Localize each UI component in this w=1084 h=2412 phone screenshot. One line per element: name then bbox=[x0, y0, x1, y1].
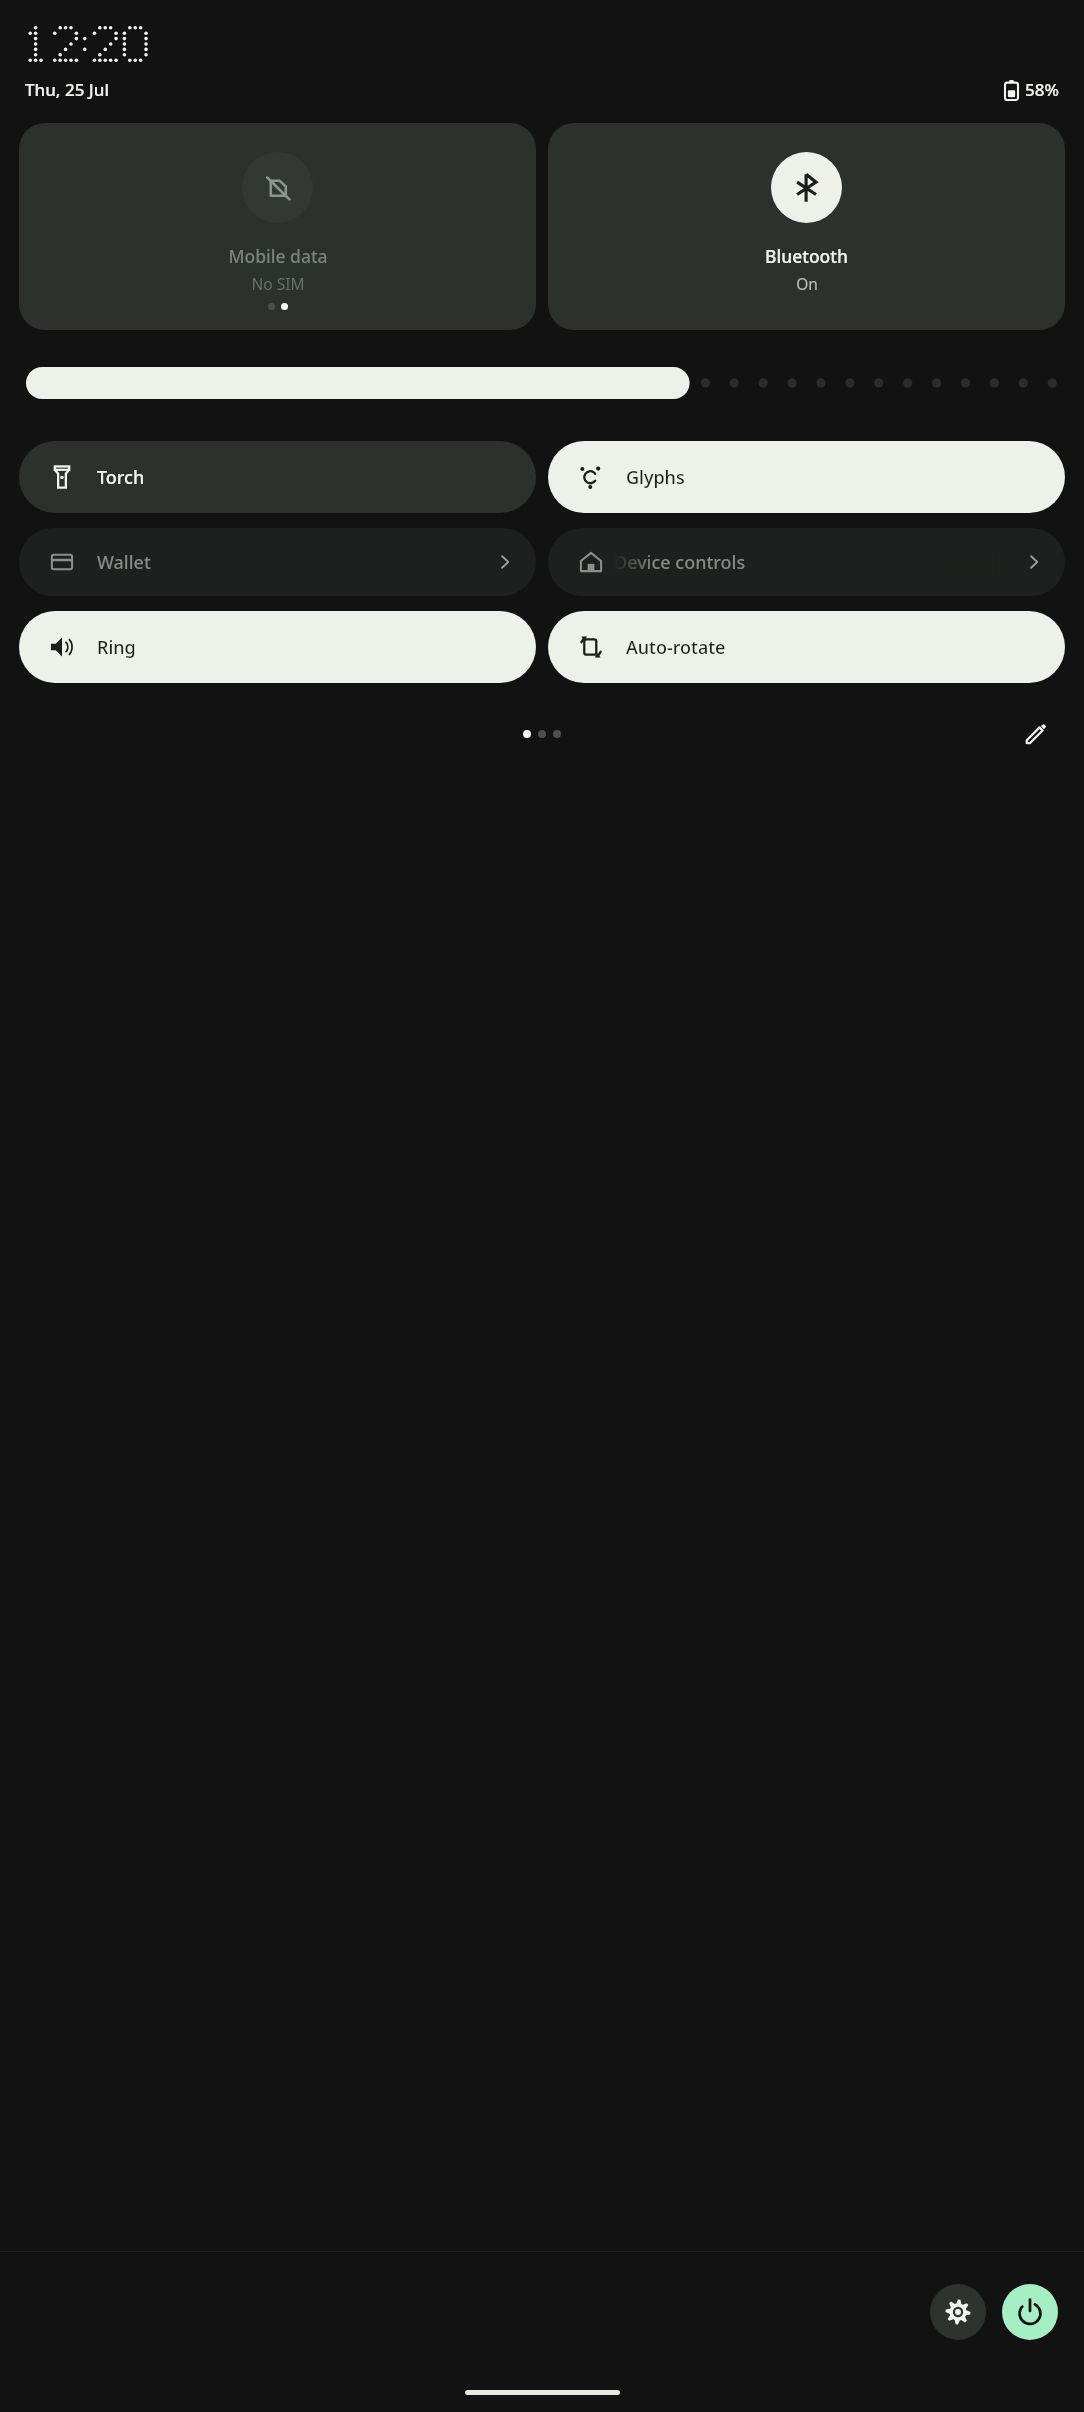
button[interactable]: Auto-rotate bbox=[548, 611, 1065, 683]
button[interactable]: Torch bbox=[19, 441, 536, 513]
staticText: Ring bbox=[97, 635, 136, 660]
staticText: Torch bbox=[97, 465, 145, 490]
button[interactable]: Bluetooth bbox=[548, 123, 1065, 330]
staticText: Wallet bbox=[97, 550, 151, 575]
button[interactable]: Glyphs bbox=[548, 441, 1065, 513]
staticText: Auto-rotate bbox=[626, 635, 726, 660]
staticText: Mobile data bbox=[228, 244, 328, 268]
staticText: 58% bbox=[1025, 78, 1059, 101]
button[interactable]: Edit tiles bbox=[1014, 717, 1058, 751]
staticText: Thu, 25 Jul bbox=[25, 78, 109, 101]
button[interactable]: Ring bbox=[19, 611, 536, 683]
staticText: Device controls bbox=[614, 550, 746, 575]
staticText: No SIM bbox=[251, 273, 305, 294]
button[interactable]: Wallet bbox=[19, 528, 536, 596]
button[interactable]: Device controls bbox=[548, 528, 1065, 596]
button[interactable]: Settings bbox=[930, 2284, 986, 2340]
button[interactable]: Power bbox=[1002, 2284, 1058, 2340]
button[interactable]: Mobile data bbox=[19, 123, 536, 330]
staticText: On bbox=[796, 273, 818, 294]
staticText: Bluetooth bbox=[765, 244, 848, 268]
staticText: Glyphs bbox=[626, 465, 685, 490]
